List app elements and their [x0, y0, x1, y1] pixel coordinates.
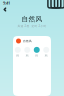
button[interactable]: Back: [2, 6, 8, 13]
staticText: 9:41: [3, 0, 10, 6]
staticText: 档: [35, 54, 38, 57]
staticText: 风速 2档: [17, 24, 29, 28]
staticText: 档: [45, 54, 48, 57]
staticText: 自然风: [21, 15, 42, 23]
staticText: 自然风: [23, 39, 32, 43]
staticText: 档: [16, 54, 19, 57]
staticText: 档: [26, 54, 29, 57]
staticText: 定时 2小时: [31, 24, 46, 28]
